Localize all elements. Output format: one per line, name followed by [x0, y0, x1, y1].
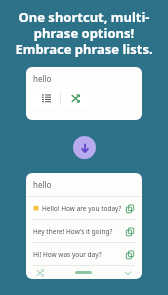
button[interactable]: Collapse [121, 266, 135, 279]
button[interactable]: Phrase list [32, 89, 60, 108]
button[interactable]: Shuffle [33, 266, 47, 279]
button[interactable]: Shuffle [61, 89, 90, 108]
button[interactable]: Hey there! How's it going? [26, 220, 142, 242]
button[interactable]: Hello! How are you today? [26, 197, 142, 219]
staticText: Hi! How was your day? [33, 250, 123, 259]
button[interactable]: Expand [73, 136, 96, 159]
staticText: Hey there! How's it going? [33, 227, 123, 236]
button[interactable]: Hi! How was your day? [26, 243, 142, 265]
staticText: hello [33, 73, 52, 84]
staticText: One shortcut, multi-phrase options! Embr… [12, 8, 156, 57]
staticText: Hello! How are you today? [42, 204, 123, 213]
button[interactable]: Copy [123, 225, 136, 238]
button[interactable]: Copy [123, 248, 136, 261]
button[interactable]: Copy [123, 202, 136, 215]
staticText: hello [33, 179, 52, 190]
